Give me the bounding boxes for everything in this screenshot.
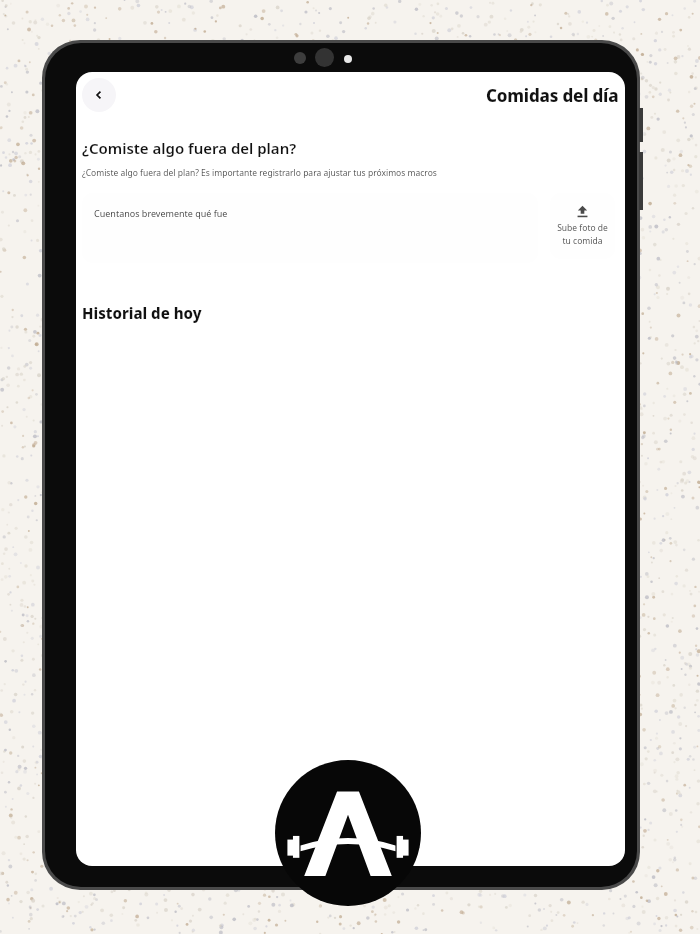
button[interactable]: Sube foto de tu comida <box>550 193 615 259</box>
staticText: Comidas del día <box>486 84 619 107</box>
button[interactable]: Cuentanos brevemente qué fue <box>82 193 538 263</box>
staticText: ¿Comiste algo fuera del plan? <box>82 138 297 158</box>
staticText: ¿Comiste algo fuera del plan? Es importa… <box>82 167 437 179</box>
staticText: Historial de hoy <box>82 303 202 323</box>
staticText: Sube foto de tu comida <box>557 222 608 247</box>
staticText: Cuentanos brevemente qué fue <box>94 207 228 219</box>
button[interactable]: Back <box>82 78 116 112</box>
